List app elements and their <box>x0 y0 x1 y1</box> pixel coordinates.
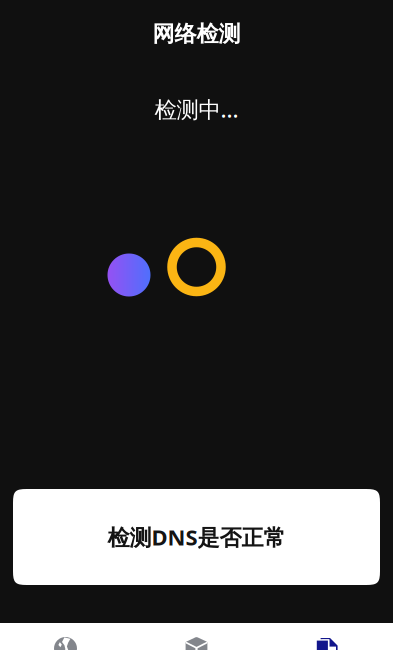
button[interactable]: 报告 <box>262 637 393 650</box>
button[interactable]: 网络 <box>0 637 131 650</box>
staticText: 检测中... <box>154 94 238 124</box>
button[interactable]: 工具 <box>131 637 262 650</box>
staticText: 网络检测 <box>152 20 240 48</box>
button[interactable]: 检测DNS是否正常 <box>13 489 380 585</box>
staticText: 检测DNS是否正常 <box>107 522 285 552</box>
